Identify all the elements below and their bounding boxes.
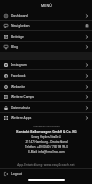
button[interactable]: Logout xyxy=(0,169,92,179)
staticText: E-Mail: info@hmc3rco.com xyxy=(28,150,65,154)
staticText: Neuigkeiten xyxy=(11,24,30,28)
staticText: Webseite xyxy=(11,85,26,89)
staticText: App-Entwicklung: www.easy2coach.net xyxy=(17,163,75,167)
staticText: Impressum und Kontakt xyxy=(33,125,60,128)
staticText: Logout xyxy=(11,172,22,176)
button[interactable]: Blog xyxy=(0,42,92,52)
staticText: Kontakt Ballonwagen GmbH & Co. KG xyxy=(16,130,77,134)
button[interactable]: Neuigkeiten xyxy=(0,21,92,31)
staticText: MENÜ xyxy=(41,3,52,8)
staticText: Georg Heyken-Straße 4 xyxy=(31,135,61,139)
button[interactable]: Weitere Camps xyxy=(0,92,92,102)
staticText: Telefon: +49 (0)40 / 730 98 99-0 xyxy=(25,145,68,149)
staticText: Beiträge xyxy=(11,35,24,39)
button[interactable]: Facebook xyxy=(0,70,92,81)
staticText: Instagram xyxy=(11,63,27,67)
staticText: Weitere Camps xyxy=(11,95,35,99)
button[interactable]: Beiträge xyxy=(0,31,92,42)
staticText: 3 xyxy=(86,24,88,28)
staticText: Weitere Apps xyxy=(11,116,32,120)
staticText: Facebook xyxy=(11,74,26,78)
button[interactable]: Webseite xyxy=(0,81,92,92)
staticText: Datenschutz xyxy=(11,106,31,110)
button[interactable]: Instagram xyxy=(0,60,92,70)
button[interactable]: Datenschutz xyxy=(0,102,92,113)
staticText: Dashboard xyxy=(11,14,28,18)
button[interactable]: Dashboard xyxy=(0,10,92,21)
staticText: Blog xyxy=(11,45,18,49)
staticText: 21147 Hamburg - Deutschland xyxy=(25,140,68,144)
button[interactable]: Weitere Apps xyxy=(0,113,92,123)
